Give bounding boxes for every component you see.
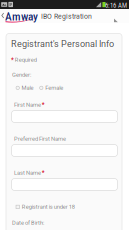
button[interactable]: Male xyxy=(16,84,34,91)
staticText: Male xyxy=(22,84,34,91)
button[interactable]: Registrant is under 18 xyxy=(16,203,75,210)
staticText: IBO Registration xyxy=(41,12,92,20)
button[interactable]: Back xyxy=(0,9,38,23)
staticText: Date of Birth: xyxy=(12,219,44,226)
staticText: Amway xyxy=(5,10,38,23)
staticText: Preferred First Name xyxy=(14,135,66,142)
staticText: Required xyxy=(15,56,37,63)
staticText: * xyxy=(11,56,14,64)
button[interactable]: Female xyxy=(40,84,63,91)
staticText: * xyxy=(42,169,45,177)
staticText: Gender: xyxy=(12,71,31,78)
staticText: Registrant is under 18 xyxy=(22,203,75,210)
staticText: Last Name xyxy=(14,169,41,176)
staticText: First Name xyxy=(14,101,41,108)
staticText: 6:16 AM xyxy=(105,1,127,9)
staticText: * xyxy=(42,101,45,109)
staticText: Female xyxy=(45,84,63,91)
staticText: Registrant's Personal Info xyxy=(11,38,114,49)
